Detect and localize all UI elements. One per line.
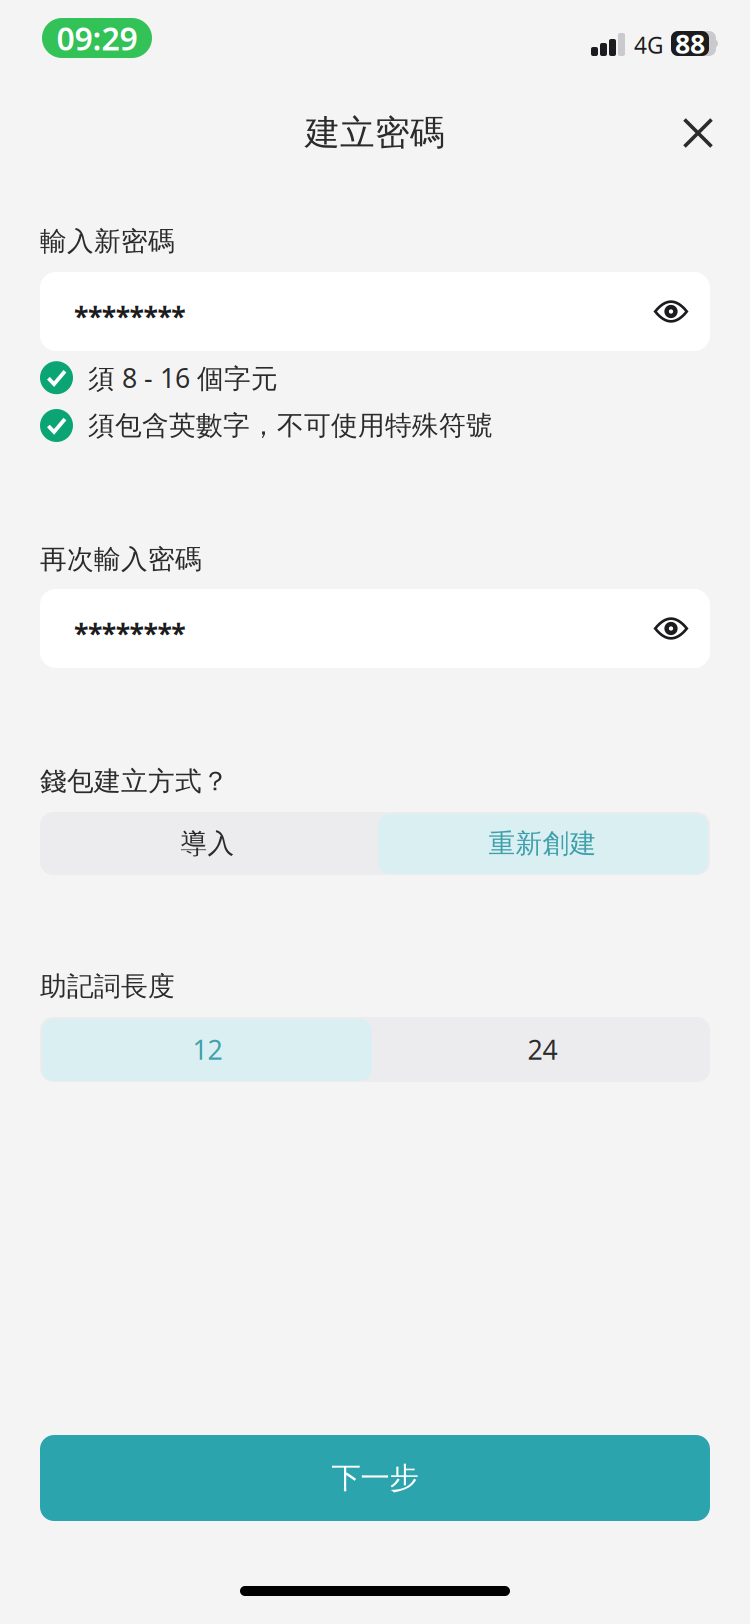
- staticText: 24: [527, 1032, 557, 1067]
- staticText: 下一步: [331, 1460, 418, 1496]
- staticText: 錢包建立方式？: [40, 765, 229, 798]
- staticText: 4G: [634, 30, 664, 60]
- staticText: 須 8 - 16 個字元: [88, 360, 278, 395]
- staticText: 助記詞長度: [40, 970, 175, 1003]
- staticText: 須包含英數字，不可使用特殊符號: [88, 409, 493, 442]
- staticText: 再次輸入密碼: [40, 543, 202, 576]
- button[interactable]: 12: [40, 1017, 375, 1082]
- button[interactable]: 重新創建: [375, 812, 710, 875]
- staticText: 導入: [180, 827, 234, 860]
- staticText: 建立密碼: [305, 112, 445, 154]
- button[interactable]: 24: [375, 1017, 710, 1082]
- staticText: ********: [74, 616, 185, 651]
- staticText: 輸入新密碼: [40, 225, 175, 258]
- staticText: 12: [192, 1032, 222, 1067]
- staticText: ********: [74, 299, 185, 334]
- staticText: 09:29: [56, 17, 137, 59]
- staticText: 重新創建: [488, 827, 596, 860]
- button[interactable]: Show password: [639, 279, 703, 343]
- button[interactable]: 下一步: [40, 1435, 710, 1521]
- button[interactable]: 導入: [40, 812, 375, 875]
- button[interactable]: Close: [665, 100, 731, 166]
- button[interactable]: Show password: [639, 596, 703, 660]
- staticText: 88: [675, 26, 705, 61]
